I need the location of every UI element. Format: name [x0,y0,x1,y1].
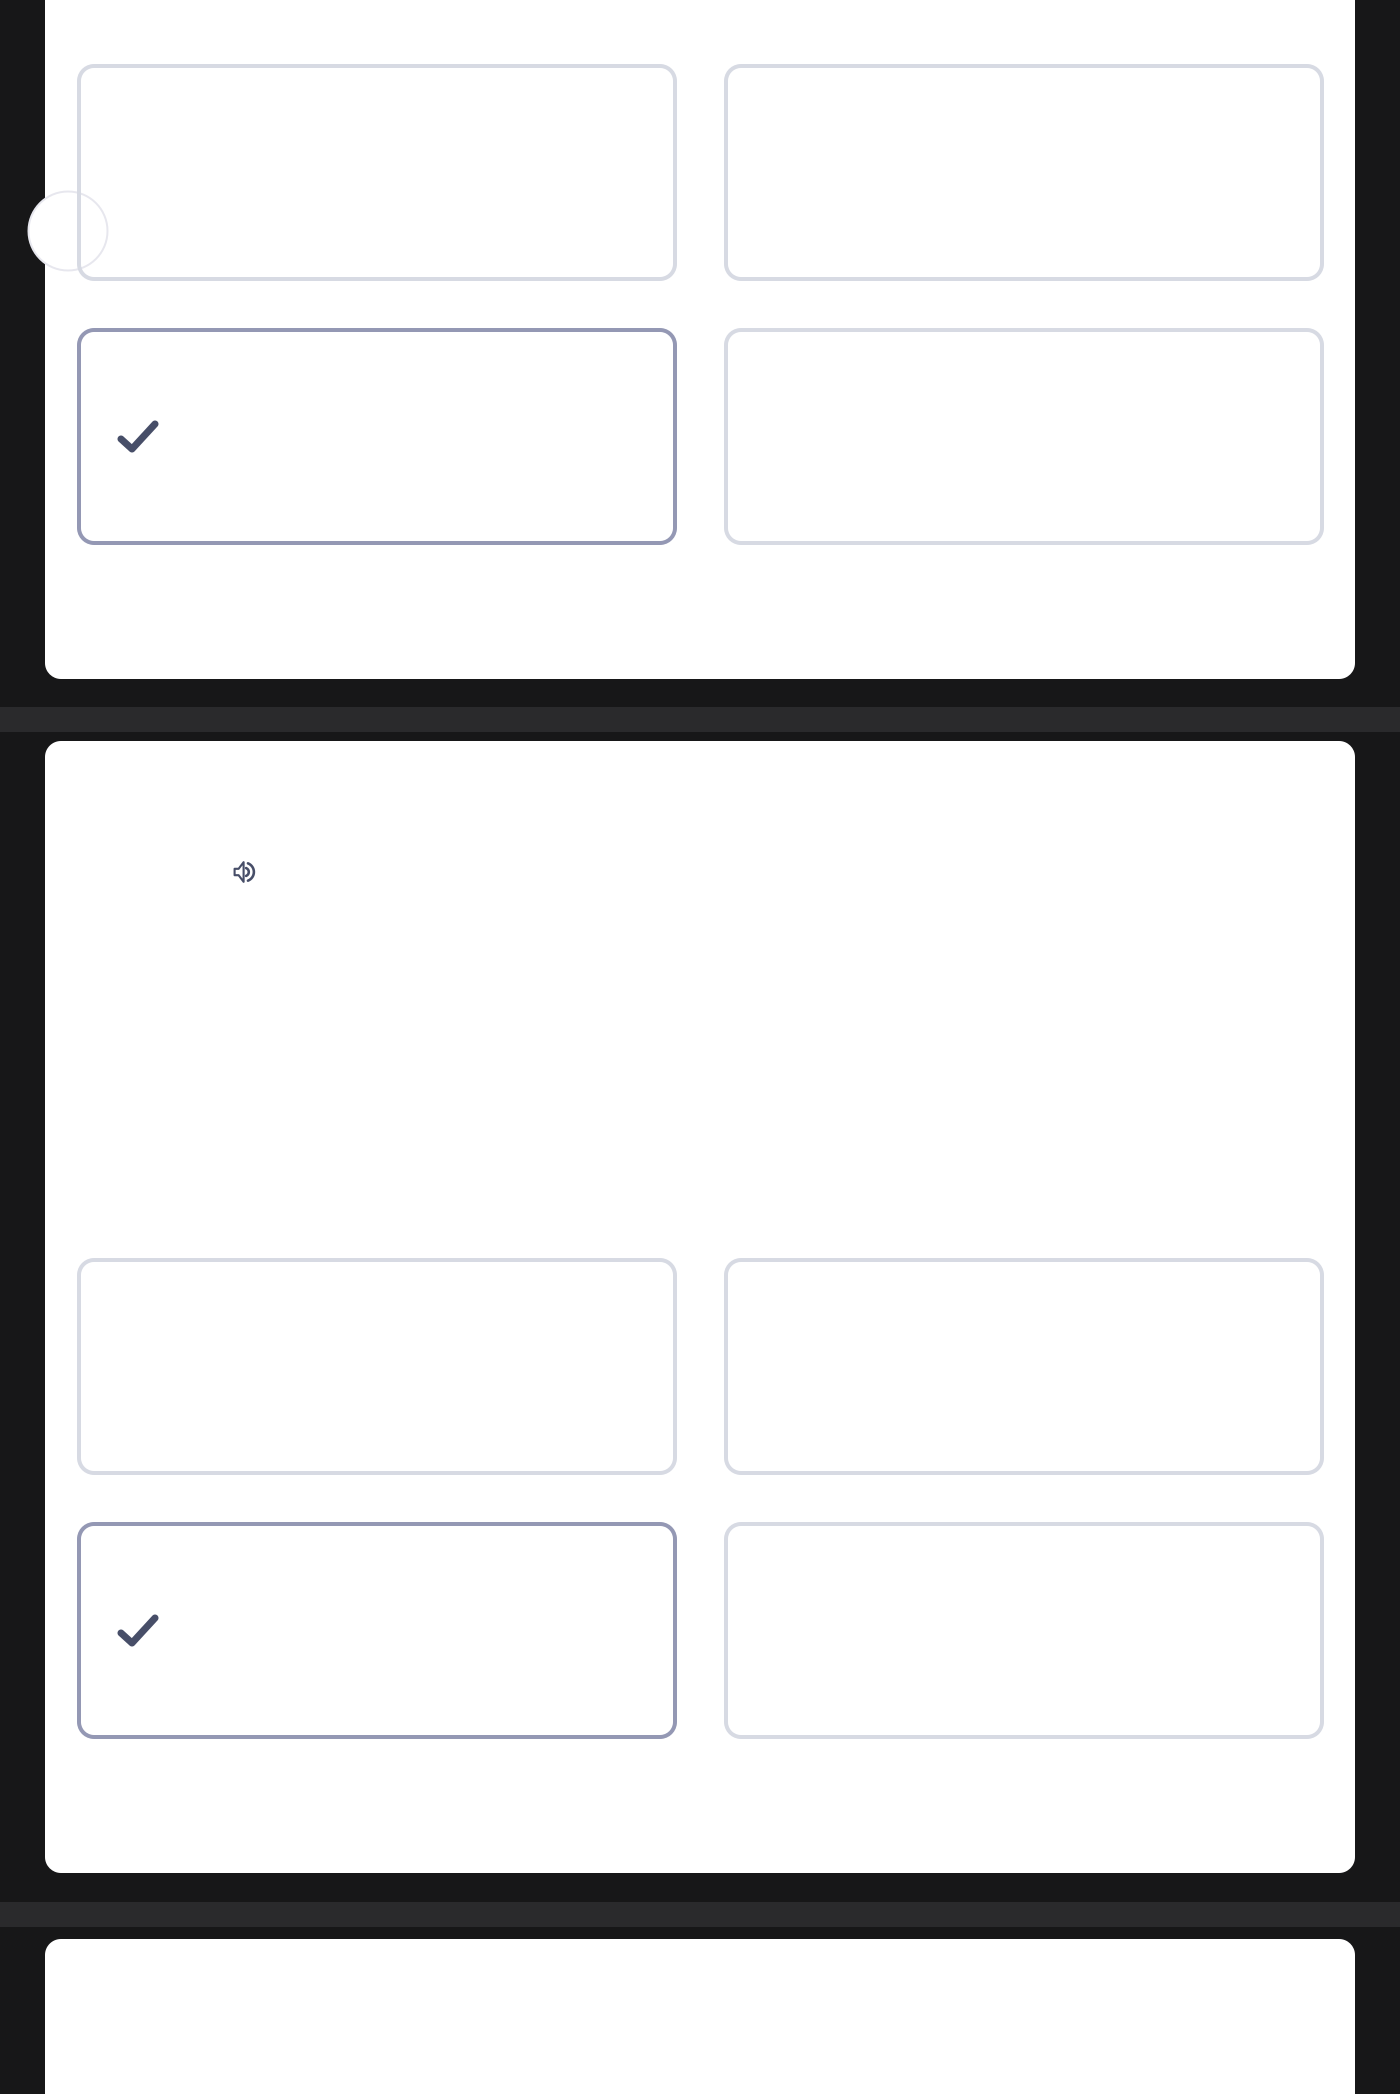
button[interactable]: Answer option [79,1260,675,1473]
button[interactable]: Selected answer [79,1524,675,1737]
button[interactable]: Answer option [726,66,1322,279]
button[interactable]: Answer option [726,1260,1322,1473]
button[interactable]: Play audio [233,860,257,884]
button[interactable]: Answer option [79,66,675,279]
button[interactable]: Answer option [726,1524,1322,1737]
button[interactable]: Selected answer [79,330,675,543]
button[interactable]: Answer option [726,330,1322,543]
